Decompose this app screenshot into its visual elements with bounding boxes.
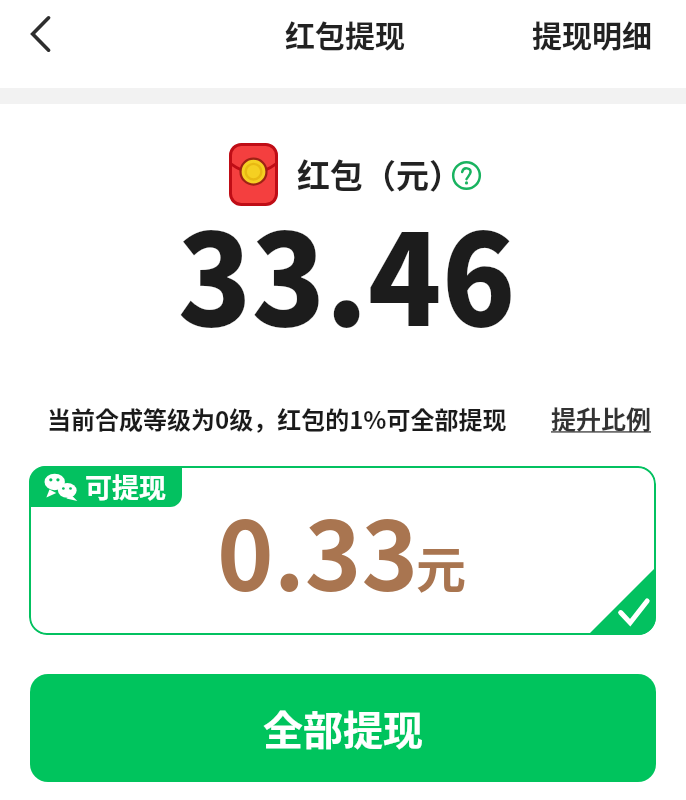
staticText: 当前合成等级为0级，红包的1%可全部提现 bbox=[47, 401, 507, 436]
staticText: 元 bbox=[416, 530, 466, 602]
staticText: 33.46 bbox=[178, 180, 516, 362]
staticText: 红包（元） bbox=[297, 150, 462, 198]
button[interactable]: 提现明细 bbox=[514, 2, 686, 65]
staticText: 红包提现 bbox=[285, 12, 405, 55]
button[interactable]: Help bbox=[449, 158, 483, 192]
staticText: 全部提现 bbox=[263, 699, 423, 757]
staticText: 0.33 bbox=[217, 480, 419, 619]
staticText: 可提现 bbox=[85, 467, 166, 506]
staticText: 提现明细 bbox=[532, 12, 652, 55]
staticText: 提升比例 bbox=[551, 400, 652, 436]
button[interactable]: 全部提现 bbox=[30, 674, 656, 782]
button[interactable]: 提升比例 bbox=[551, 400, 652, 436]
button[interactable]: 0.33 bbox=[29, 466, 656, 635]
button[interactable]: Back bbox=[17, 10, 65, 58]
button[interactable]: 可提现 bbox=[29, 466, 182, 507]
